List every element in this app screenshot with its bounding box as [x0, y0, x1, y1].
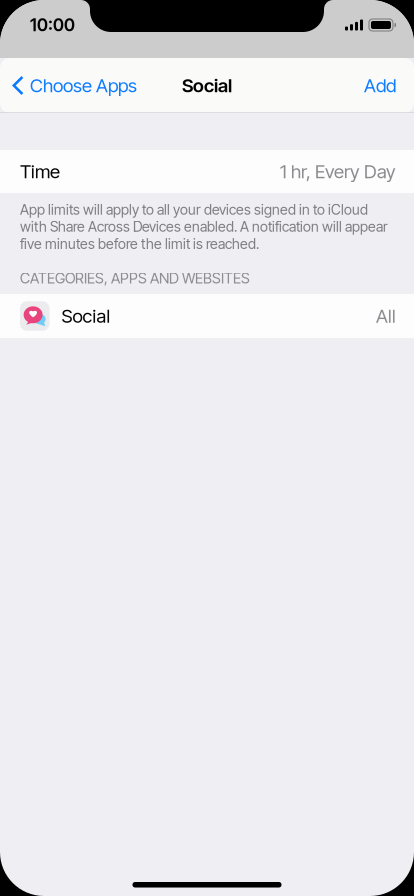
staticText: App limits will apply to all your device… [20, 201, 388, 252]
staticText: Choose Apps [30, 74, 137, 97]
button[interactable]: Add [346, 63, 414, 107]
staticText: Time [20, 160, 60, 183]
staticText: All [376, 305, 396, 327]
staticText: CATEGORIES, APPS AND WEBSITES [20, 269, 250, 287]
button[interactable]: Time [0, 150, 414, 193]
staticText: 1 hr, Every Day [280, 160, 396, 183]
staticText: Social [61, 305, 110, 327]
button[interactable]: Social [0, 294, 414, 338]
staticText: 10:00 [30, 14, 75, 35]
staticText: Add [364, 74, 396, 97]
staticText: Social [182, 74, 232, 97]
button[interactable]: Choose Apps [0, 63, 147, 107]
